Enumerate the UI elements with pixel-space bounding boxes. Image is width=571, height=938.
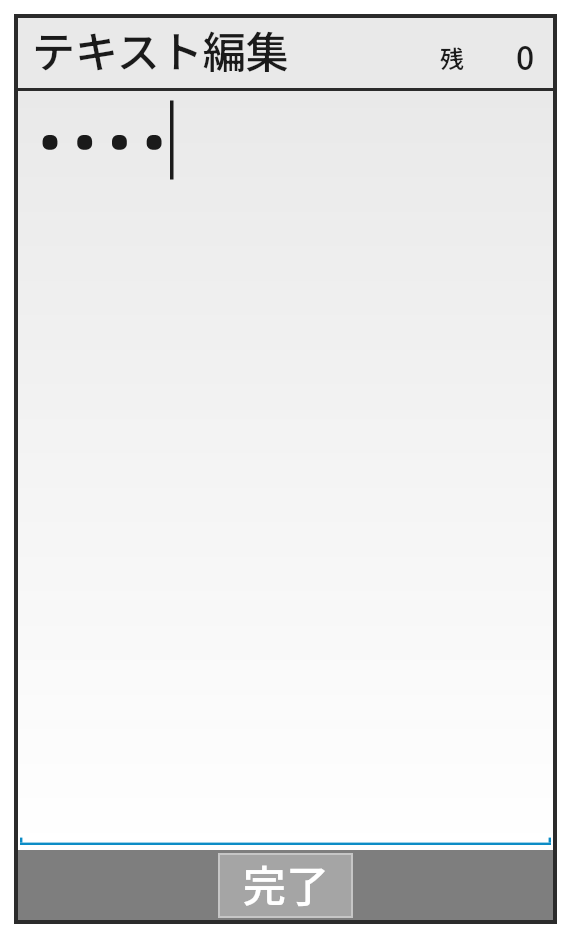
staticText: 0 bbox=[516, 33, 535, 79]
button[interactable]: 完了 bbox=[220, 855, 351, 916]
staticText: テキスト編集 bbox=[32, 18, 289, 80]
button[interactable]: Text input field bbox=[18, 91, 553, 850]
staticText: 残 bbox=[440, 40, 464, 75]
staticText: 完了 bbox=[243, 852, 329, 913]
